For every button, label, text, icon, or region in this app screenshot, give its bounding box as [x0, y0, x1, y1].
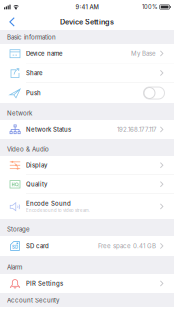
button[interactable]: Share	[0, 63, 174, 82]
staticText: 192.168.177.117	[117, 126, 156, 133]
staticText: Encode sound to video stream.	[26, 208, 90, 213]
button[interactable]: Encode Sound	[0, 194, 174, 219]
button[interactable]: Back	[0, 17, 15, 27]
staticText: Network	[7, 110, 32, 117]
staticText: Quality	[26, 181, 47, 188]
staticText: Display	[26, 162, 47, 169]
staticText: Basic information	[7, 34, 56, 41]
staticText: Network Status	[26, 126, 71, 133]
button[interactable]: Display	[0, 156, 174, 174]
staticText: Video & Audio	[7, 146, 49, 153]
staticText: PIR Settings	[26, 280, 63, 287]
staticText: Alarm	[7, 264, 22, 271]
staticText: Account Security	[7, 297, 59, 304]
button[interactable]: Network Status	[0, 120, 174, 139]
staticText: Storage	[7, 226, 30, 233]
staticText: Push	[26, 89, 41, 97]
staticText: Device Settings	[60, 18, 114, 26]
button[interactable]: Push toggle	[143, 87, 164, 99]
staticText: My Base	[131, 50, 156, 57]
staticText: SD	[12, 245, 18, 250]
button[interactable]: SD	[0, 236, 174, 256]
staticText: 9:41 AM	[75, 3, 98, 11]
staticText: SD card	[26, 242, 49, 250]
staticText: Share	[26, 69, 43, 77]
staticText: Encode Sound	[26, 200, 71, 207]
staticText: Free space 0.41 GB	[98, 242, 156, 250]
button[interactable]: PIR Settings	[0, 274, 174, 293]
staticText: Device name	[26, 50, 63, 57]
staticText: 100%	[142, 3, 158, 10]
button[interactable]: Device name	[0, 44, 174, 63]
button[interactable]: Quality	[0, 175, 174, 193]
